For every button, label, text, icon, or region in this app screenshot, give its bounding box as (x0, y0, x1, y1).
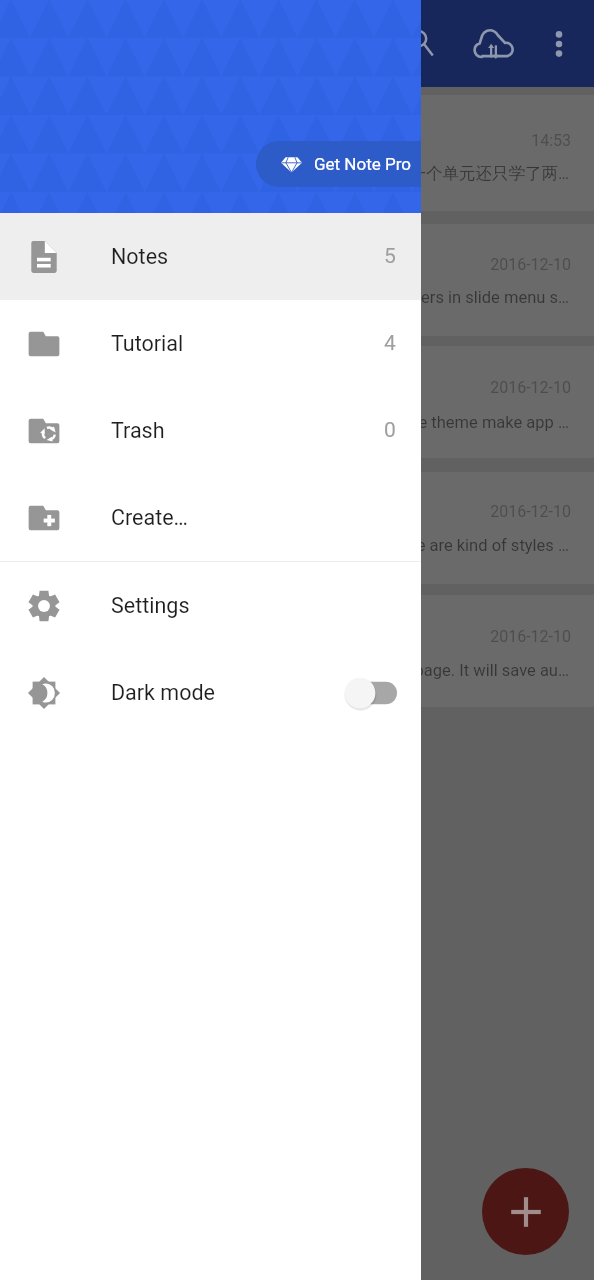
staticText: 5 (384, 244, 396, 269)
staticText: 一个单元还只学了两… (0, 163, 569, 184)
staticText: There are kind of styles … (0, 536, 569, 555)
button[interactable]: Trash (0, 387, 421, 474)
button[interactable]: 2016-12-10 (0, 224, 594, 336)
button[interactable]: Create… (0, 474, 421, 561)
staticText: 2016-12-10 (0, 378, 571, 397)
button[interactable]: Tutorial (0, 300, 421, 387)
button[interactable]: Dark mode (0, 649, 421, 736)
button[interactable]: Search (402, 24, 442, 64)
staticText: Get Note Pro (314, 154, 412, 174)
button[interactable]: Notes (0, 213, 421, 300)
button[interactable]: 2016-12-10 (0, 595, 594, 707)
staticText: Create… (111, 505, 188, 530)
staticText: 0 (384, 418, 396, 443)
staticText: Tutorial (111, 331, 184, 356)
button[interactable]: Sync (472, 23, 515, 66)
button[interactable]: Get Note Pro (256, 141, 421, 187)
button[interactable]: Add note (482, 1168, 569, 1255)
staticText: Notes (111, 244, 169, 269)
staticText: Trash (111, 418, 165, 443)
button[interactable]: Settings (0, 562, 421, 649)
staticText: 4 (384, 331, 396, 356)
staticText: More theme make app … (0, 413, 569, 432)
staticText: 2016-12-10 (0, 627, 571, 646)
button[interactable]: 14:53 (0, 95, 594, 211)
staticText: Settings (111, 593, 190, 618)
staticText: Dark mode (111, 680, 215, 705)
staticText: this page. It will save au… (0, 661, 569, 680)
button[interactable]: More options (539, 24, 579, 64)
staticText: 2016-12-10 (0, 255, 571, 274)
staticText: Folders in slide menu s… (0, 288, 569, 307)
button[interactable]: 2016-12-10 (0, 472, 594, 584)
staticText: 2016-12-10 (0, 502, 571, 521)
button[interactable]: 2016-12-10 (0, 346, 594, 458)
staticText: 14:53 (0, 131, 571, 150)
